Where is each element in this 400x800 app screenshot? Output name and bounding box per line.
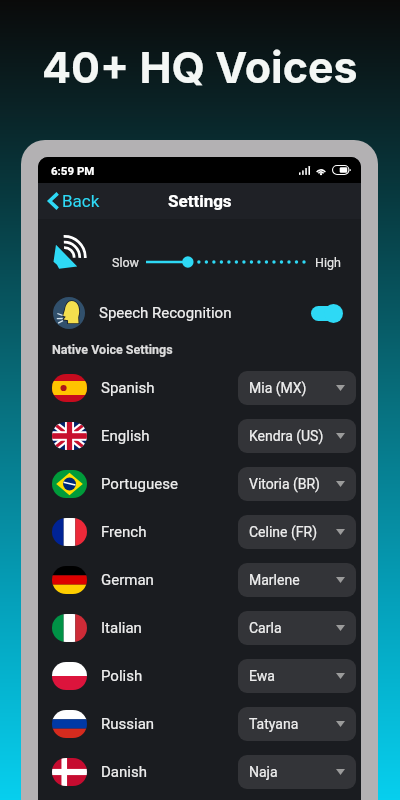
- staticText: Italian: [101, 619, 142, 637]
- button[interactable]: Carla: [238, 611, 356, 645]
- button[interactable]: Back: [38, 183, 135, 219]
- staticText: French: [101, 523, 147, 541]
- button[interactable]: Celine (FR): [238, 515, 356, 549]
- staticText: Portuguese: [101, 475, 178, 493]
- staticText: Danish: [101, 763, 147, 781]
- staticText: Russian: [101, 715, 155, 733]
- staticText: Native Voice Settings: [52, 342, 173, 357]
- staticText: Slow: [112, 255, 139, 270]
- staticText: German: [101, 571, 154, 589]
- staticText: Marlene: [249, 572, 300, 588]
- button[interactable]: German: [38, 556, 361, 604]
- staticText: Naja: [249, 764, 278, 780]
- button[interactable]: Danish: [38, 748, 361, 796]
- staticText: 6:59 PM: [51, 164, 95, 177]
- staticText: Vitoria (BR): [249, 476, 320, 492]
- button[interactable]: Russian: [38, 700, 361, 748]
- staticText: English: [101, 427, 150, 445]
- staticText: Mia (MX): [249, 380, 307, 396]
- button[interactable]: Portuguese: [38, 460, 361, 508]
- button[interactable]: Mia (MX): [238, 371, 356, 405]
- staticText: Kendra (US): [249, 428, 324, 444]
- button[interactable]: Kendra (US): [238, 419, 356, 453]
- staticText: Celine (FR): [249, 524, 318, 540]
- staticText: 40+ HQ Voices: [42, 41, 358, 93]
- button[interactable]: Polish: [38, 652, 361, 700]
- button[interactable]: Spanish: [38, 364, 361, 412]
- staticText: Carla: [249, 620, 282, 636]
- button[interactable]: Italian: [38, 604, 361, 652]
- staticText: Speech Recognition: [99, 304, 232, 322]
- staticText: Polish: [101, 667, 143, 685]
- button[interactable]: Speech Recognition: [38, 285, 361, 341]
- staticText: Ewa: [249, 668, 275, 684]
- staticText: High: [315, 255, 341, 270]
- button[interactable]: Marlene: [238, 563, 356, 597]
- button[interactable]: English: [38, 412, 361, 460]
- staticText: Tatyana: [249, 716, 299, 732]
- other: Speech speed: [53, 234, 86, 269]
- button[interactable]: Speech speed slider: [141, 250, 309, 274]
- button[interactable]: Vitoria (BR): [238, 467, 356, 501]
- staticText: Back: [62, 191, 100, 211]
- button[interactable]: Tatyana: [238, 707, 356, 741]
- staticText: Settings: [168, 191, 232, 211]
- staticText: Spanish: [101, 379, 155, 397]
- button[interactable]: Naja: [238, 755, 356, 789]
- button[interactable]: French: [38, 508, 361, 556]
- button[interactable]: Ewa: [238, 659, 356, 693]
